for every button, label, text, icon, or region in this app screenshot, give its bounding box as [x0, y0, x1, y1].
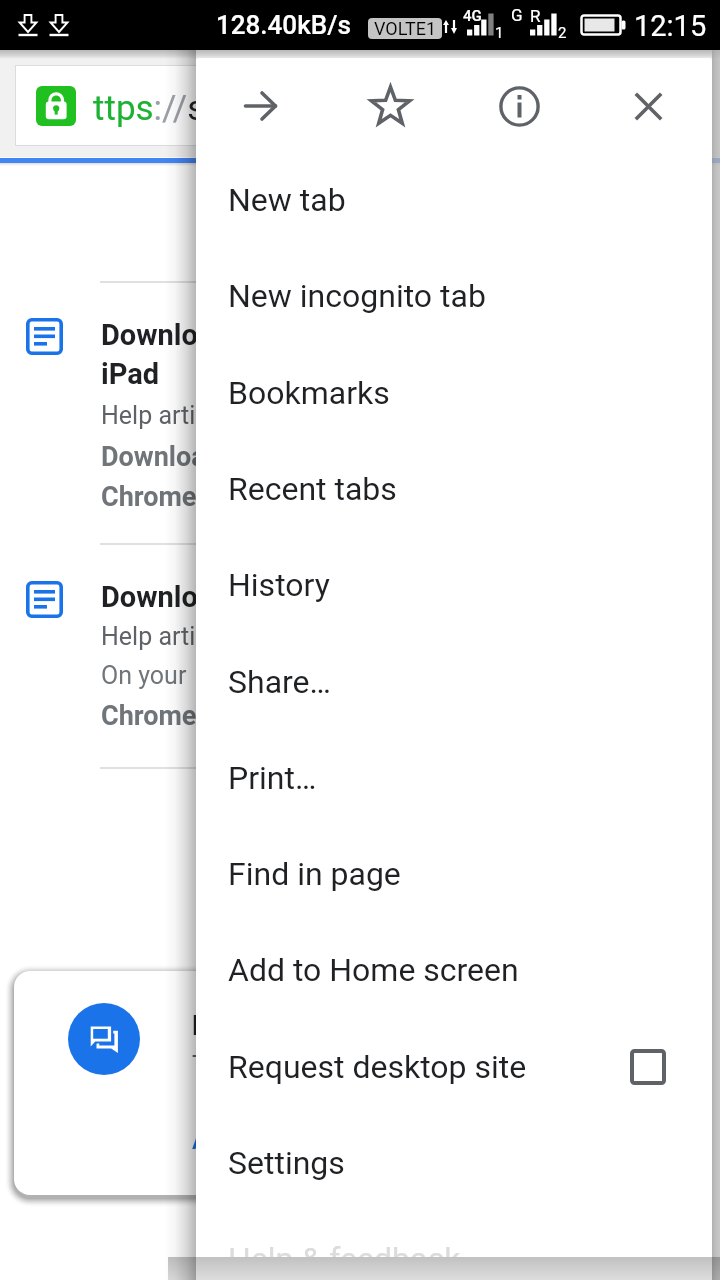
staticText: 12:15: [634, 9, 707, 43]
button[interactable]: Forward: [217, 68, 305, 144]
staticText: 4G: [463, 7, 482, 25]
button[interactable]: Chat: [68, 1003, 140, 1075]
button[interactable]: New incognito tab: [196, 248, 712, 344]
staticText: ttps://s: [93, 88, 206, 129]
button[interactable]: Share…: [196, 634, 712, 730]
staticText: VOLTE1: [374, 18, 437, 39]
button[interactable]: History: [196, 537, 712, 633]
staticText: Settings: [228, 1144, 345, 1182]
staticText: Add to Home screen: [228, 951, 519, 989]
button[interactable]: Find in page: [196, 826, 712, 922]
staticText: Print…: [228, 759, 317, 797]
staticText: Downloa: [101, 318, 214, 352]
staticText: Help & feedback: [228, 1240, 461, 1257]
staticText: New tab: [228, 181, 346, 219]
staticText: G: [511, 5, 523, 25]
staticText: Help artic: [101, 622, 209, 651]
staticText: ASK NOW: [192, 1126, 303, 1155]
staticText: Find in page: [228, 855, 401, 893]
staticText: Share…: [228, 663, 331, 701]
staticText: Talk to a Chrome expert.: [192, 1051, 463, 1080]
button[interactable]: New tab: [196, 152, 712, 248]
button[interactable]: Bookmark: [346, 68, 434, 144]
staticText: Bookmarks: [228, 374, 390, 412]
button[interactable]: Request desktop site: [196, 1019, 712, 1115]
button[interactable]: Recent tabs: [196, 441, 712, 537]
staticText: Recent tabs: [228, 470, 397, 508]
staticText: 128.40kB/s: [216, 10, 351, 40]
button[interactable]: Print…: [196, 730, 712, 826]
button[interactable]: Page info: [475, 68, 563, 144]
staticText: Chrome: [101, 700, 197, 732]
staticText: 1: [495, 24, 504, 42]
staticText: Request desktop site: [228, 1048, 527, 1086]
staticText: 2: [558, 24, 567, 42]
staticText: History: [228, 566, 330, 604]
button[interactable]: Close: [604, 68, 692, 144]
staticText: Downloa: [101, 441, 206, 473]
staticText: Downloa: [101, 580, 214, 614]
staticText: iPad: [101, 357, 160, 391]
button[interactable]: Add to Home screen: [196, 922, 712, 1018]
staticText: New incognito tab: [228, 277, 486, 315]
staticText: Help artic: [101, 401, 209, 430]
staticText: Have a question?: [192, 1010, 401, 1042]
button[interactable]: Bookmarks: [196, 345, 712, 441]
staticText: Chrome: [101, 481, 197, 513]
staticText: R: [530, 6, 541, 26]
button[interactable]: Settings: [196, 1115, 712, 1211]
staticText: On your: [101, 661, 187, 690]
button[interactable]: Help & feedback: [196, 1211, 712, 1257]
